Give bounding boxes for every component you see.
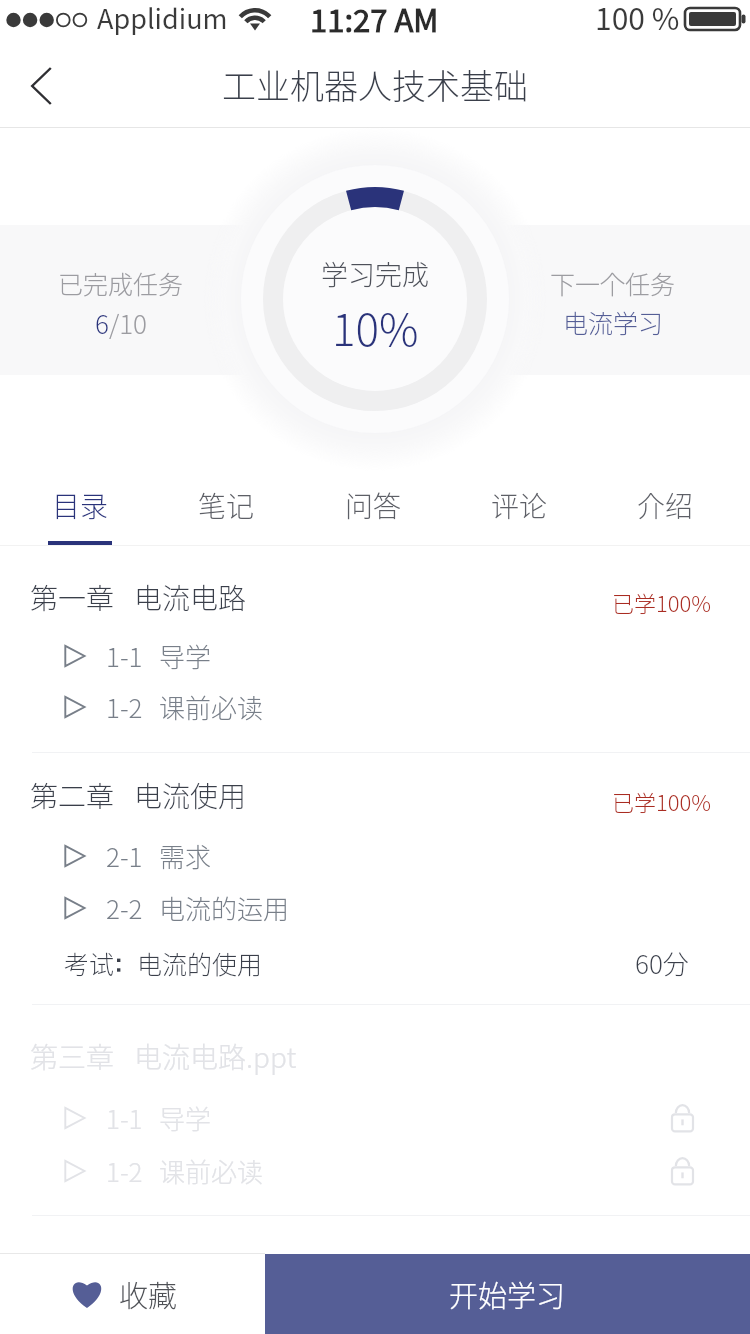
staticText: 导学 (159, 637, 212, 675)
staticText: 学习完成 (321, 254, 429, 293)
button[interactable]: 1-1 (0, 630, 750, 681)
staticText: Applidium (97, 0, 228, 37)
staticText: 已学100% (612, 586, 712, 618)
staticText: 10% (332, 295, 419, 359)
staticText: 问答 (345, 485, 402, 526)
button[interactable]: 第三章 (0, 1025, 750, 1087)
staticText: 1-1 (106, 1099, 143, 1137)
button[interactable]: 1-2 (0, 1144, 750, 1197)
staticText: 导学 (159, 1099, 212, 1137)
staticText: 考试 (64, 945, 115, 981)
staticText: 1-2 (106, 688, 143, 726)
staticText: 需求 (159, 837, 212, 875)
button[interactable]: 介绍 (633, 477, 697, 545)
staticText: 2-1 (106, 837, 143, 875)
staticText: 评论 (491, 485, 548, 526)
button[interactable]: 1-1 (0, 1092, 750, 1144)
button[interactable]: 笔记 (194, 477, 258, 545)
staticText: 电流电路.ppt (134, 1036, 297, 1077)
button[interactable]: 2-2 (0, 882, 750, 934)
button[interactable]: 目录 (48, 477, 112, 545)
button[interactable]: 问答 (341, 477, 405, 545)
staticText: 1-2 (106, 1152, 143, 1190)
staticText: 第一章 (30, 577, 115, 618)
staticText: 下一个任务 (550, 265, 676, 301)
staticText: 1-1 (106, 637, 143, 675)
staticText: 课前必读 (159, 1152, 264, 1190)
button[interactable]: 第一章 (0, 566, 750, 628)
staticText: 100 % (595, 0, 680, 35)
button[interactable]: 考试 (0, 934, 750, 992)
staticText: 6/10 (95, 304, 147, 342)
button[interactable]: 1-2 (0, 681, 750, 733)
button[interactable]: Back (8, 40, 74, 128)
staticText: 11:27 AM (310, 0, 439, 36)
staticText: 笔记 (198, 485, 255, 526)
staticText: 电流的运用 (159, 889, 290, 927)
staticText: 目录 (52, 485, 109, 526)
button[interactable]: 第二章 (0, 764, 750, 827)
staticText: 电流使用 (134, 775, 247, 816)
button[interactable]: 评论 (487, 477, 551, 545)
staticText: 电流学习 (563, 304, 664, 340)
button[interactable]: 开始学习 (265, 1254, 750, 1334)
staticText: 电流电路 (134, 577, 247, 618)
staticText: 介绍 (637, 485, 694, 526)
staticText: 课前必读 (159, 688, 264, 726)
staticText: 开始学习 (449, 1273, 566, 1315)
staticText: 电流的使用 (137, 945, 263, 981)
staticText: 已学100% (612, 785, 712, 817)
staticText: 第二章 (30, 775, 115, 816)
button[interactable]: 2-1 (0, 830, 750, 882)
staticText: 60分 (635, 944, 689, 982)
staticText: 已完成任务 (58, 265, 184, 301)
staticText: 第三章 (30, 1036, 115, 1077)
button[interactable]: 收藏 (0, 1254, 265, 1334)
staticText: 工业机器人技术基础 (222, 60, 528, 109)
staticText: 2-2 (106, 889, 143, 927)
staticText: 收藏 (119, 1273, 178, 1315)
